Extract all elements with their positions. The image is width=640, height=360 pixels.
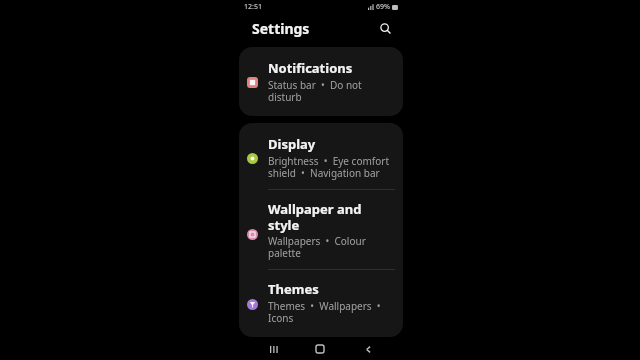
staticText: Brightness • Eye comfort shield • Naviga… <box>268 154 395 180</box>
staticText: Settings <box>252 19 310 38</box>
staticText: 69% <box>376 2 390 12</box>
staticText: Notifications <box>268 59 353 77</box>
staticText: Display <box>268 135 316 153</box>
button[interactable]: Back <box>355 338 381 360</box>
button[interactable]: Wallpaper and style <box>239 190 403 269</box>
staticText: Wallpaper and style <box>268 200 395 233</box>
staticText: Status bar • Do not disturb <box>268 78 395 104</box>
staticText: 12:51 <box>244 2 262 12</box>
button[interactable]: Recents <box>260 338 286 360</box>
staticText: Themes • Wallpapers • Icons <box>268 299 395 325</box>
button[interactable]: Notifications <box>239 47 403 116</box>
staticText: Themes <box>268 280 319 298</box>
button[interactable]: Display <box>239 123 403 189</box>
button[interactable]: Themes <box>239 270 403 337</box>
button[interactable]: Search <box>375 18 395 38</box>
button[interactable]: Home <box>307 338 333 360</box>
staticText: Wallpapers • Colour palette <box>268 234 395 260</box>
